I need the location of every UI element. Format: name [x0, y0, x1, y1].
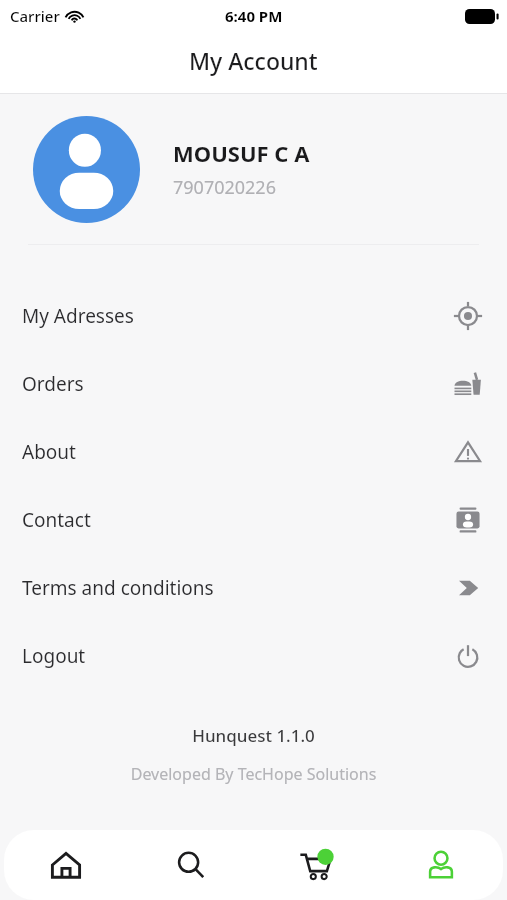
staticText: Terms and conditions — [22, 575, 214, 601]
staticText: Developed By TecHope Solutions — [0, 763, 507, 785]
button[interactable]: Home — [4, 830, 128, 900]
staticText: My Account — [189, 45, 318, 76]
staticText: Orders — [22, 371, 84, 397]
staticText: My Adresses — [22, 303, 134, 329]
staticText: Carrier — [10, 6, 60, 26]
button[interactable]: Terms and conditions — [0, 554, 507, 622]
staticText: Hunquest 1.1.0 — [0, 724, 507, 747]
button[interactable]: Search — [128, 830, 253, 900]
staticText: MOUSUF C A — [173, 138, 310, 168]
button[interactable]: My Adresses — [0, 282, 507, 350]
button[interactable]: Account — [378, 830, 503, 900]
staticText: About — [22, 439, 76, 465]
button[interactable]: About — [0, 418, 507, 486]
staticText: Contact — [22, 507, 91, 533]
staticText: Logout — [22, 643, 86, 669]
button[interactable]: Contact — [0, 486, 507, 554]
button[interactable]: MOUSUF C A — [0, 94, 507, 244]
button[interactable]: Orders — [0, 350, 507, 418]
staticText: 6:40 PM — [225, 6, 283, 26]
button[interactable]: Cart — [253, 830, 378, 900]
staticText: 7907020226 — [173, 175, 276, 200]
button[interactable]: Logout — [0, 622, 507, 690]
